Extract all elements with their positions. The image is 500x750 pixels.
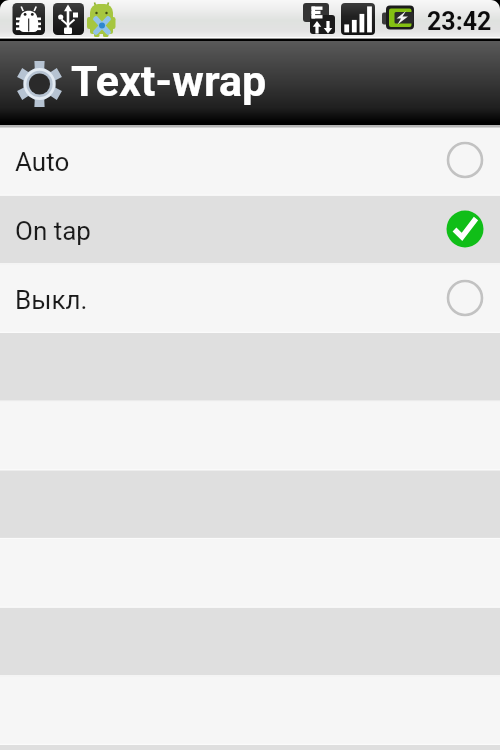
staticText: Text-wrap xyxy=(71,56,267,106)
staticText: On tap xyxy=(15,216,91,246)
button[interactable] xyxy=(0,679,500,748)
button[interactable] xyxy=(0,472,500,541)
staticText: Выкл. xyxy=(15,285,88,315)
other: Not selected xyxy=(446,141,484,179)
staticText: 23:42 xyxy=(427,7,492,36)
other: Selected xyxy=(446,210,484,248)
button[interactable]: Auto xyxy=(0,127,500,196)
button[interactable]: Выкл. xyxy=(0,265,500,334)
button[interactable] xyxy=(0,541,500,610)
other: Not selected xyxy=(446,279,484,317)
button[interactable] xyxy=(0,610,500,679)
staticText: Auto xyxy=(15,147,70,177)
button[interactable]: On tap xyxy=(0,196,500,265)
button[interactable] xyxy=(0,334,500,403)
